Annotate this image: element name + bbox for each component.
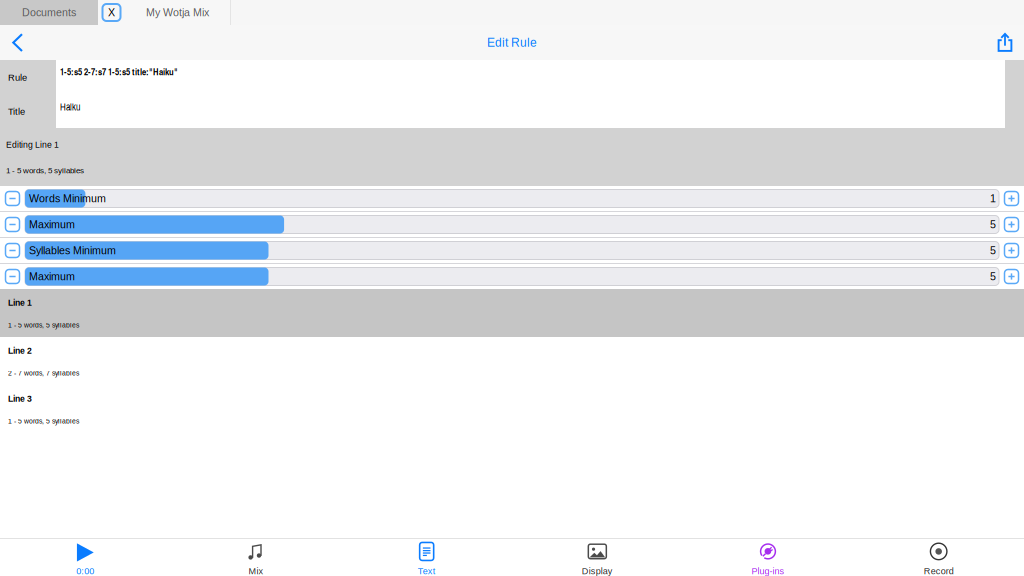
staticText: 5 [990, 244, 996, 256]
button[interactable]: Increase Syllables Minimum [999, 238, 1024, 263]
button[interactable]: Increase Maximum [999, 212, 1024, 237]
button[interactable]: Mix [171, 539, 341, 576]
staticText: 5 [990, 218, 996, 230]
button[interactable]: Line 3 [0, 385, 1024, 433]
staticText: Edit Rule [487, 36, 537, 49]
button[interactable]: 0:00 [0, 539, 171, 576]
staticText: X [108, 6, 115, 18]
button[interactable]: Line 1 [0, 289, 1024, 337]
staticText: Line 2 [8, 346, 32, 356]
staticText: Line 3 [8, 394, 32, 404]
staticText: 0:00 [76, 566, 94, 576]
button[interactable]: Line 2 [0, 337, 1024, 385]
staticText: 2 - 7 words, 7 syllables [8, 369, 79, 377]
button[interactable]: Share [986, 25, 1024, 60]
button[interactable]: Increase Maximum [999, 264, 1024, 289]
staticText: Maximum [29, 218, 75, 230]
staticText: My Wotja Mix [146, 6, 209, 18]
staticText: 1-5:s5 2-7:s7 1-5:s5 title:"Haiku" [60, 65, 178, 78]
button[interactable]: Decrease Syllables Minimum [0, 238, 25, 263]
button[interactable]: Increase Words Minimum [999, 186, 1024, 211]
staticText: 1 - 5 words, 5 syllables [8, 321, 79, 329]
button[interactable]: Documents [0, 0, 98, 25]
button[interactable]: Record [853, 539, 1024, 576]
button[interactable]: Decrease Maximum [0, 264, 25, 289]
staticText: Mix [248, 566, 263, 576]
button[interactable]: Plug-ins [683, 539, 853, 576]
button[interactable]: Haiku [56, 95, 1005, 128]
staticText: 1 - 5 words, 5 syllables [6, 166, 84, 175]
button[interactable]: Back [0, 25, 35, 60]
staticText: Words Minimum [29, 192, 106, 204]
staticText: Editing Line 1 [6, 140, 59, 150]
button[interactable]: 1-5:s5 2-7:s7 1-5:s5 title:"Haiku" [56, 60, 1005, 95]
button[interactable]: Decrease Words Minimum [0, 186, 25, 211]
button[interactable]: Close document [98, 0, 125, 25]
button[interactable]: My Wotja Mix [125, 0, 230, 25]
staticText: Maximum [29, 270, 75, 282]
button[interactable]: Display [512, 539, 683, 576]
staticText: Record [924, 566, 954, 576]
staticText: Haiku [60, 100, 80, 113]
staticText: Syllables Minimum [29, 244, 116, 256]
staticText: Line 1 [8, 298, 32, 308]
staticText: Plug-ins [751, 566, 784, 576]
staticText: Rule [8, 72, 27, 83]
button[interactable]: Text [341, 539, 512, 576]
staticText: 1 - 5 words, 5 syllables [8, 417, 79, 425]
button[interactable]: Decrease Maximum [0, 212, 25, 237]
staticText: Documents [22, 6, 76, 18]
staticText: 1 [990, 192, 996, 204]
staticText: 5 [990, 270, 996, 282]
staticText: Display [582, 566, 613, 576]
staticText: Text [418, 566, 436, 576]
staticText: Title [8, 106, 25, 117]
